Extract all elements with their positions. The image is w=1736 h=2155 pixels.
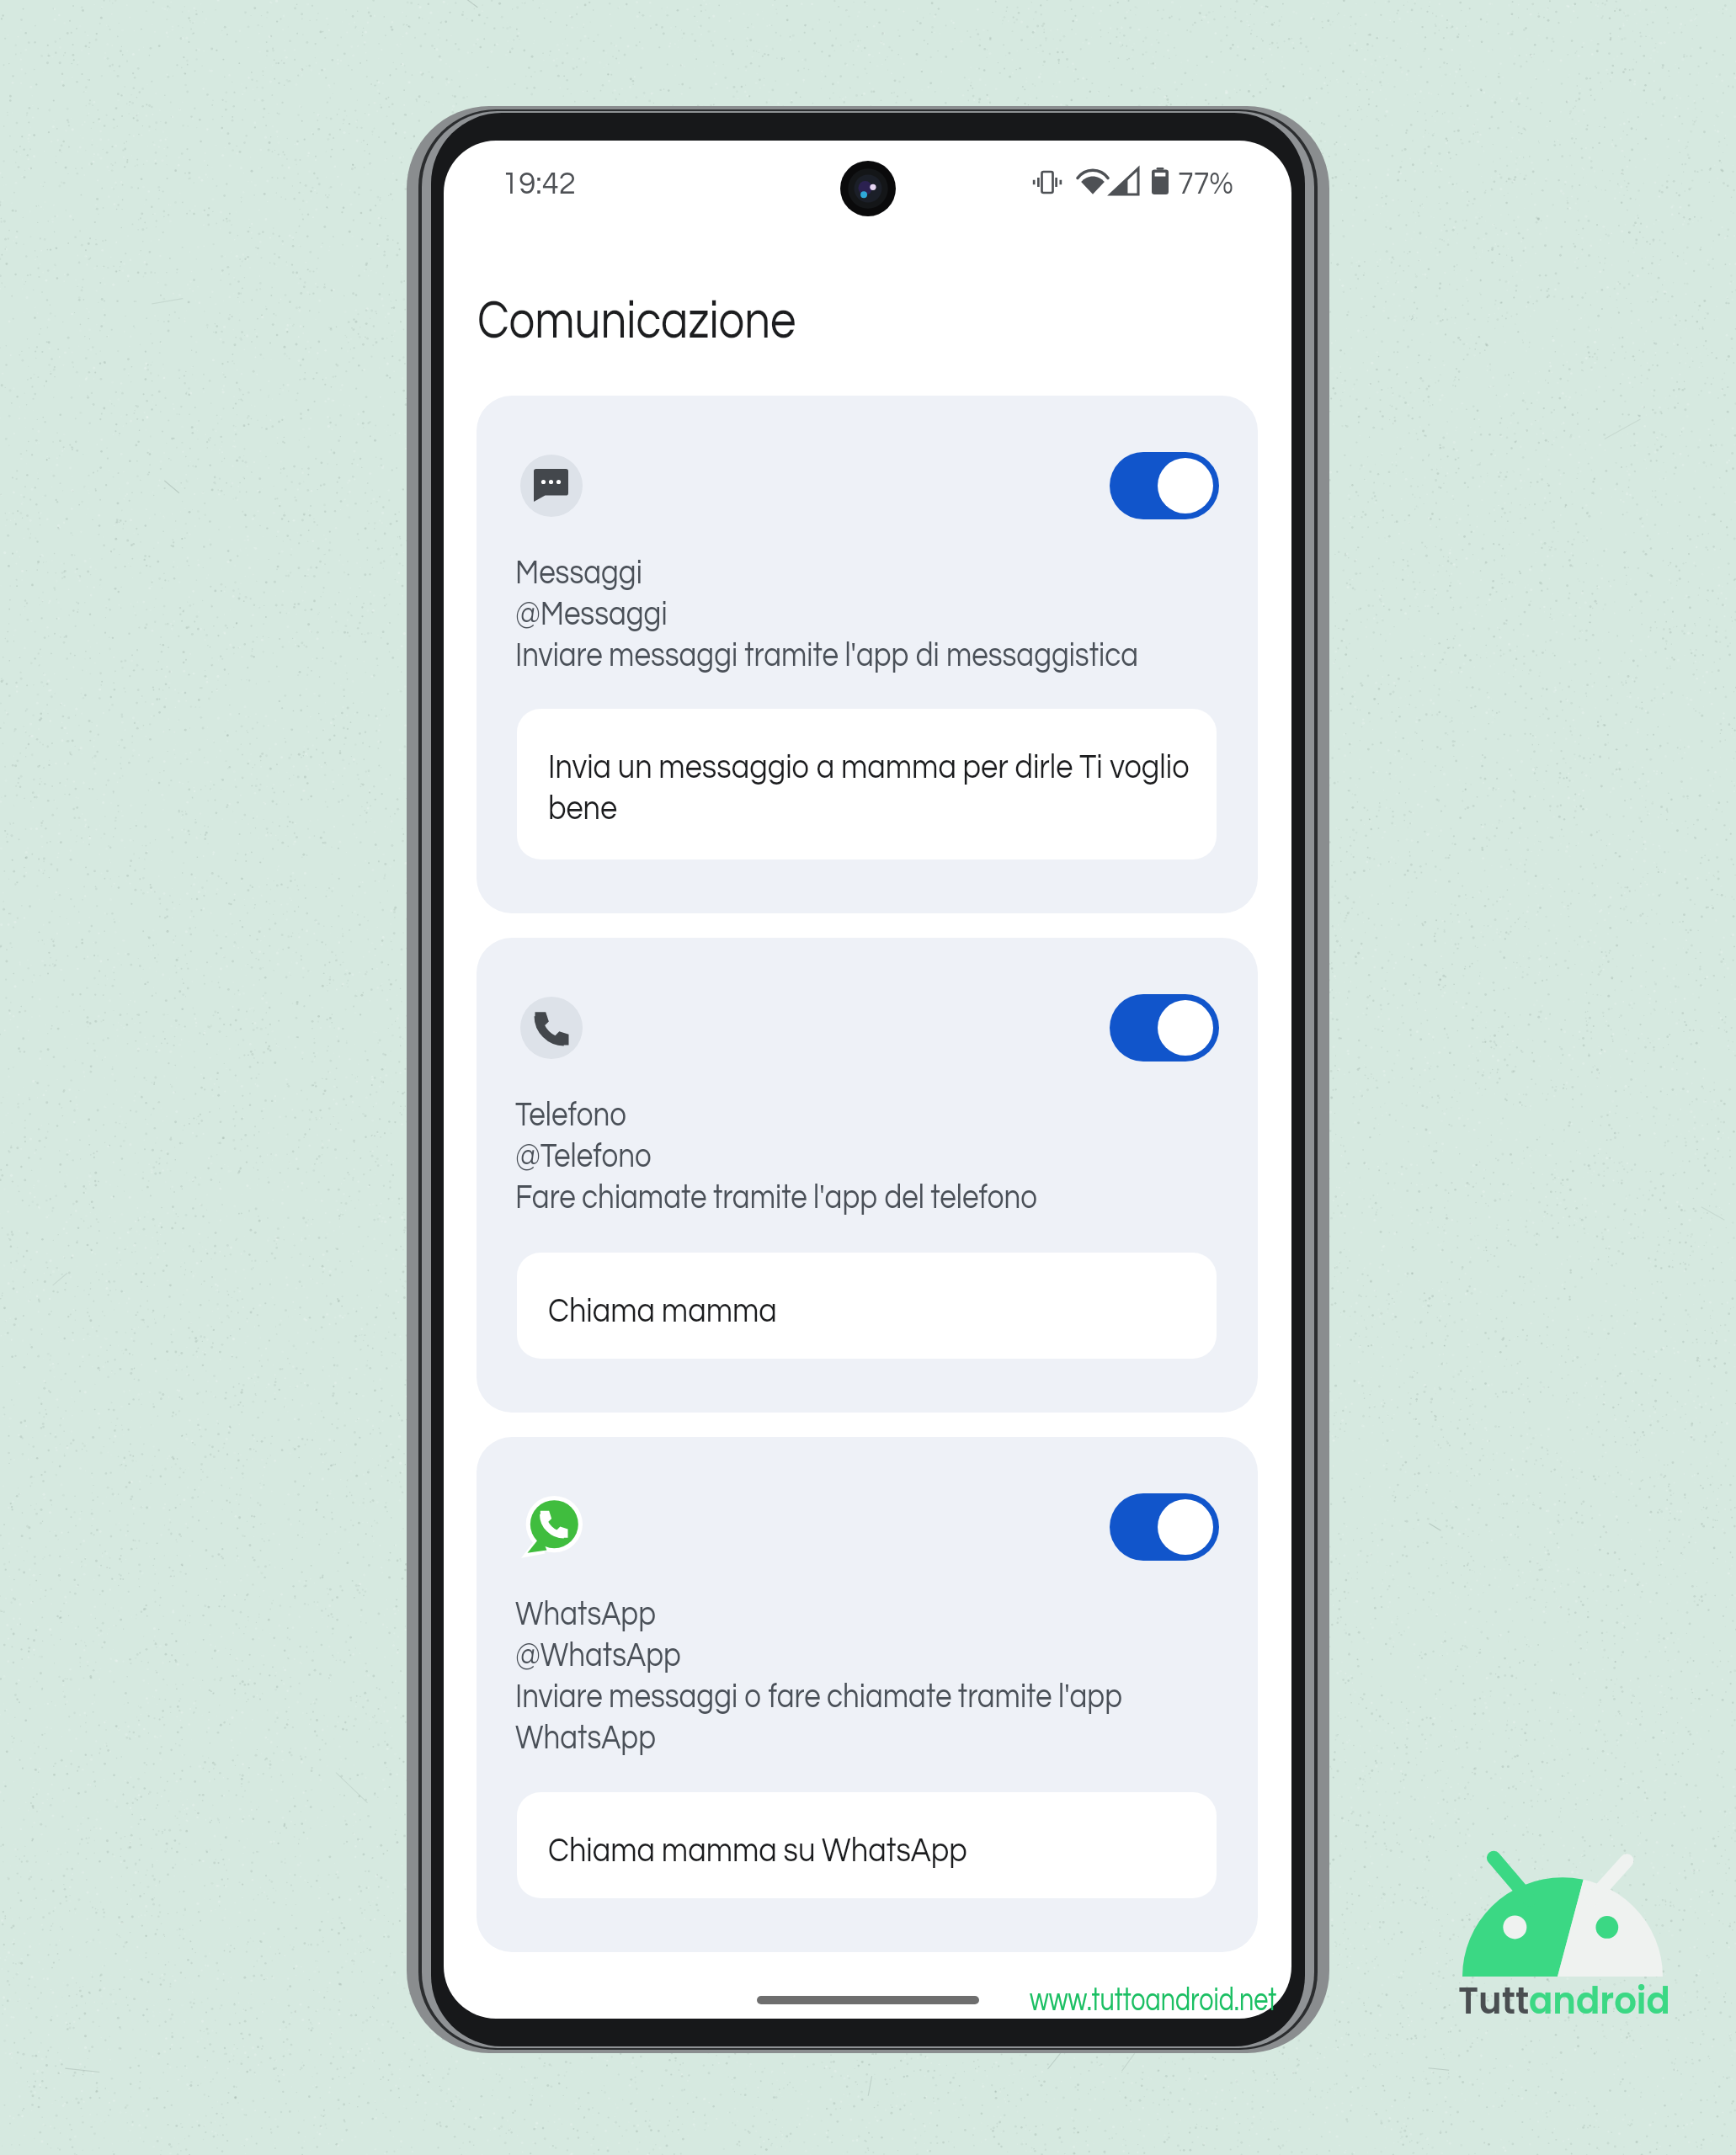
- button[interactable]: Attiva app: [477, 938, 1258, 1413]
- button[interactable]: Invia un messaggio a mamma per dirle Ti …: [517, 709, 1217, 859]
- button[interactable]: Attiva app: [477, 396, 1258, 913]
- button[interactable]: Attiva app: [1110, 994, 1219, 1062]
- staticText: Inviare messaggi tramite l'app di messag…: [515, 633, 1233, 674]
- staticText: WhatsApp: [515, 1592, 1233, 1633]
- staticText: 77%: [1178, 163, 1291, 201]
- button[interactable]: Chiama mamma su WhatsApp: [517, 1792, 1217, 1898]
- button[interactable]: Attiva app: [477, 1437, 1258, 1952]
- button[interactable]: Attiva app: [1110, 1493, 1219, 1561]
- staticText: Inviare messaggi o fare chiamate tramite…: [515, 1674, 1233, 1757]
- staticText: Chiama mamma: [548, 1289, 1216, 1330]
- staticText: Chiama mamma su WhatsApp: [548, 1828, 1216, 1870]
- staticText: Comunicazione: [477, 285, 915, 351]
- button[interactable]: Attiva app: [1110, 452, 1219, 519]
- staticText: @WhatsApp: [515, 1633, 1233, 1674]
- staticText: Fare chiamate tramite l'app del telefono: [515, 1175, 1233, 1216]
- staticText: Messaggi: [515, 551, 1233, 592]
- staticText: Telefono: [515, 1093, 1233, 1134]
- staticText: 19:42: [502, 163, 666, 201]
- staticText: Tutt: [1458, 1982, 1618, 2025]
- staticText: @Messaggi: [515, 592, 1233, 633]
- staticText: @Telefono: [515, 1134, 1233, 1175]
- staticText: www.tuttoandroid.net: [1030, 1979, 1287, 2018]
- staticText: android: [1529, 1982, 1736, 2025]
- button[interactable]: Chiama mamma: [517, 1253, 1217, 1359]
- staticText: Invia un messaggio a mamma per dirle Ti …: [548, 745, 1216, 827]
